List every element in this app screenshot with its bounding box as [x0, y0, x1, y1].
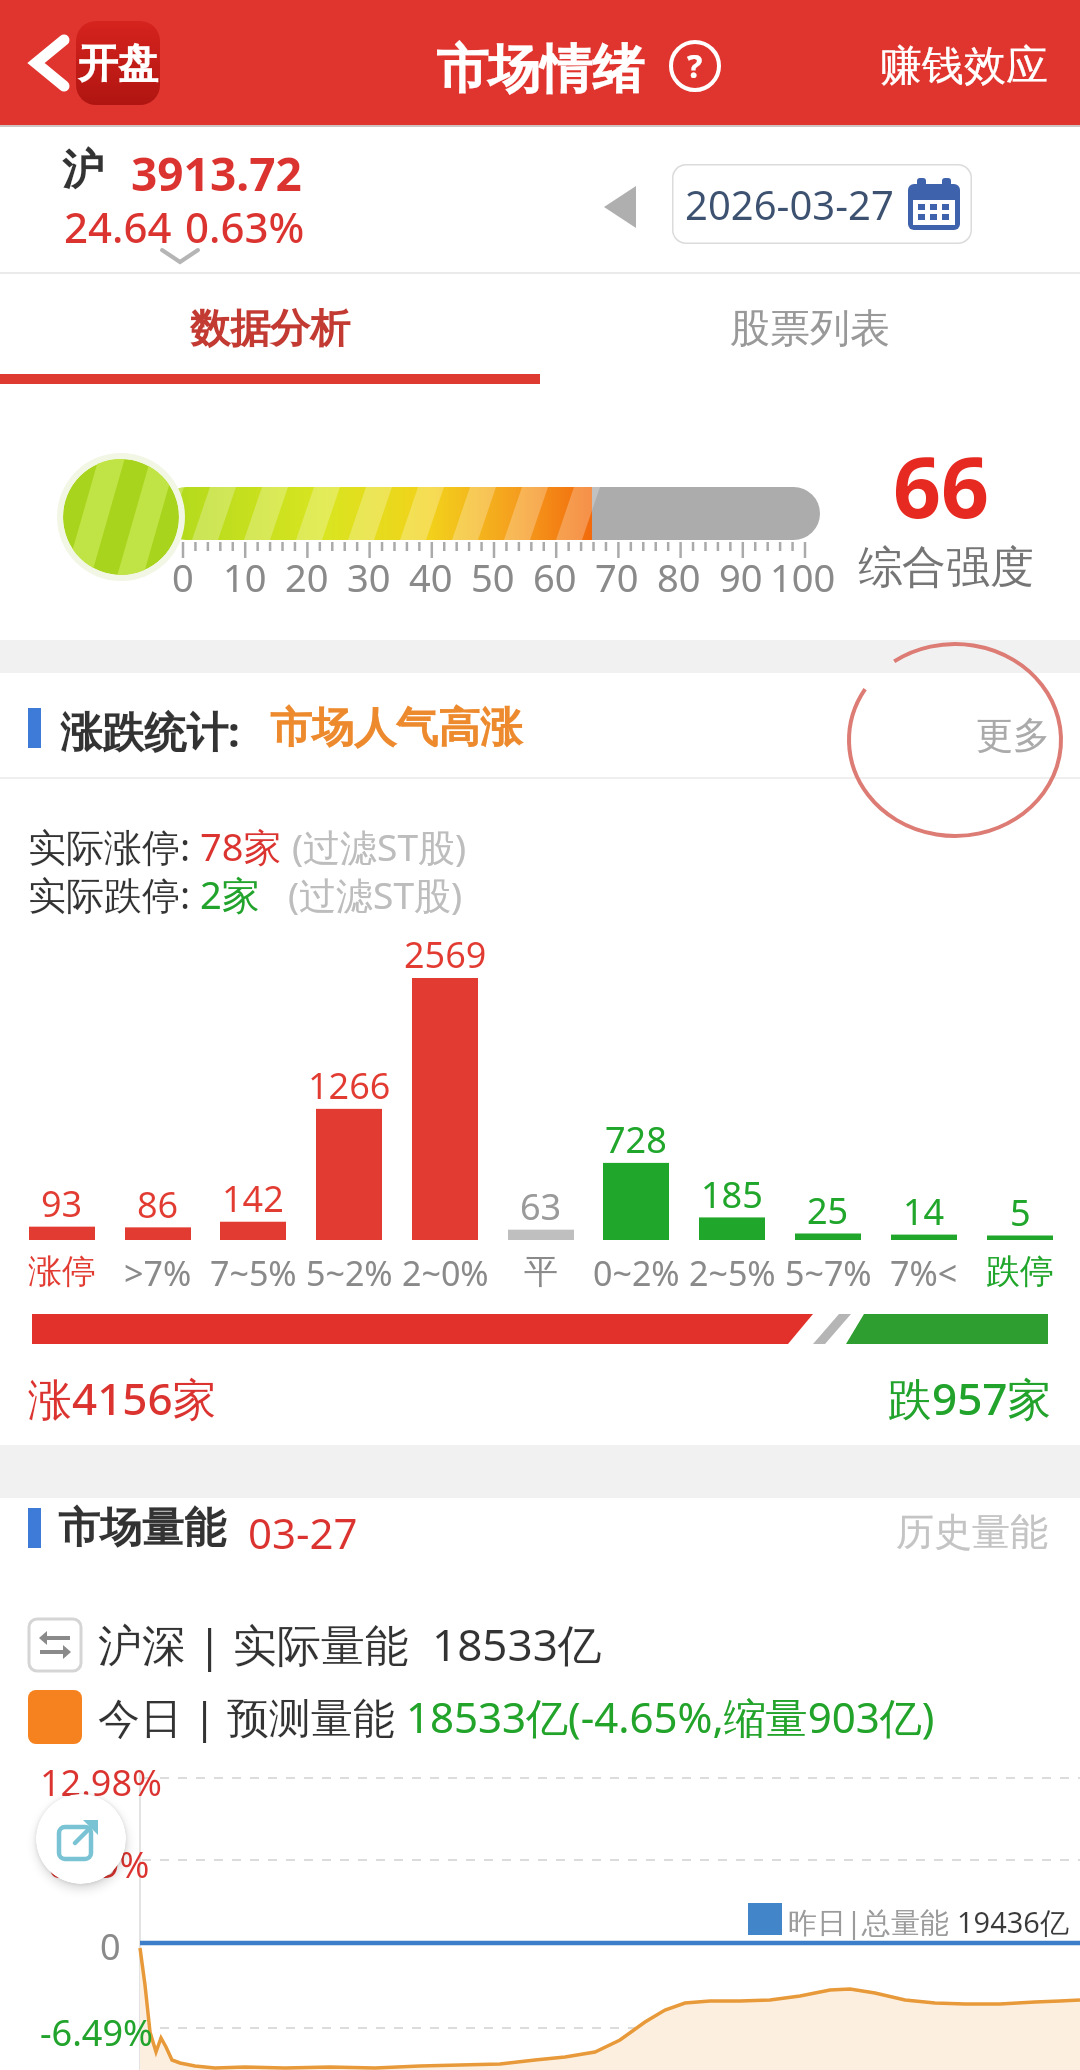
staticText: 实际涨停:: [28, 820, 191, 872]
staticText: 78家: [200, 820, 282, 872]
button[interactable]: 赚钱效应: [880, 40, 1048, 93]
staticText: 跌957家: [888, 1368, 1052, 1428]
staticText: 0: [100, 1922, 121, 1971]
staticText: 市场量能: [58, 1502, 226, 1555]
staticText: 63: [520, 1182, 562, 1231]
staticText: 2026-03-27: [685, 177, 894, 231]
staticText: 市场情绪: [436, 37, 644, 103]
staticText: 12.98%: [40, 1758, 162, 1807]
staticText: 涨跌统计:: [60, 702, 240, 759]
staticText: 综合强度: [858, 540, 1034, 595]
staticText: 历史量能: [896, 1508, 1048, 1556]
staticText: 股票列表: [730, 303, 890, 353]
staticText: 66: [893, 428, 990, 542]
staticText: 实际跌停:: [28, 868, 191, 920]
button[interactable]: 更多: [976, 712, 1050, 759]
staticText: 3913.72: [131, 142, 302, 205]
staticText: 沪: [62, 144, 104, 197]
staticText: -6.49%: [40, 2008, 153, 2057]
staticText: 数据分析: [190, 303, 350, 353]
staticText: 6.49%: [48, 1840, 150, 1889]
button[interactable]: 历史量能: [896, 1508, 1048, 1556]
staticText: 7%<: [890, 1250, 958, 1296]
staticText: 平: [524, 1250, 558, 1293]
button[interactable]: [36, 1794, 126, 1884]
staticText: 86: [137, 1180, 179, 1229]
staticText: 5: [1010, 1188, 1031, 1237]
staticText: 开盘: [78, 38, 158, 88]
staticText: 24.64: [64, 198, 172, 255]
staticText: 0: [172, 551, 194, 603]
staticText: 涨停: [28, 1250, 96, 1293]
staticText: 2569: [404, 930, 487, 979]
button[interactable]: 数据分析: [0, 272, 540, 384]
staticText: 7~5%: [210, 1250, 297, 1296]
button[interactable]: 股票列表: [540, 272, 1080, 384]
staticText: 5~7%: [785, 1250, 872, 1296]
staticText: 涨4156家: [28, 1368, 217, 1428]
staticText: ?: [687, 44, 703, 88]
staticText: 100: [770, 551, 836, 603]
staticText: 5~2%: [306, 1250, 393, 1296]
staticText: 40: [409, 551, 453, 603]
staticText: 142: [222, 1174, 284, 1223]
staticText: 80: [657, 551, 701, 603]
staticText: 03-27: [248, 1504, 358, 1561]
staticText: 20: [285, 551, 329, 603]
staticText: 更多: [976, 712, 1050, 759]
staticText: (过滤ST股): [292, 821, 467, 872]
button[interactable]: 开盘: [20, 0, 160, 125]
staticText: 25: [807, 1186, 849, 1235]
staticText: 2~0%: [402, 1250, 489, 1296]
staticText: 沪深 | 实际量能 18533亿: [98, 1614, 602, 1674]
staticText: 2~5%: [689, 1250, 776, 1296]
staticText: 90: [719, 551, 763, 603]
staticText: 跌停: [986, 1250, 1054, 1293]
staticText: 赚钱效应: [880, 40, 1048, 93]
staticText: 昨日|总量能: [788, 1902, 957, 1942]
staticText: 市场人气高涨: [270, 702, 522, 755]
staticText: 14: [903, 1187, 945, 1236]
button[interactable]: 2026-03-27: [672, 164, 972, 244]
staticText: 0~2%: [593, 1250, 680, 1296]
staticText: >7%: [124, 1250, 192, 1296]
staticText: 今日 | 预测量能: [98, 1688, 406, 1745]
staticText: 50: [471, 551, 515, 603]
staticText: 2家: [200, 868, 260, 920]
staticText: 0.63%: [185, 198, 305, 255]
staticText: 70: [595, 551, 639, 603]
staticText: 185: [701, 1170, 763, 1219]
staticText: 30: [347, 551, 391, 603]
staticText: 60: [533, 551, 577, 603]
staticText: 93: [41, 1179, 83, 1228]
staticText: (过滤ST股): [288, 869, 463, 920]
staticText: 1266: [308, 1061, 391, 1110]
staticText: 728: [605, 1115, 667, 1164]
staticText: 19436亿: [957, 1902, 1069, 1942]
staticText: 18533亿(-4.65%,缩量903亿): [406, 1688, 935, 1745]
staticText: 10: [223, 551, 267, 603]
